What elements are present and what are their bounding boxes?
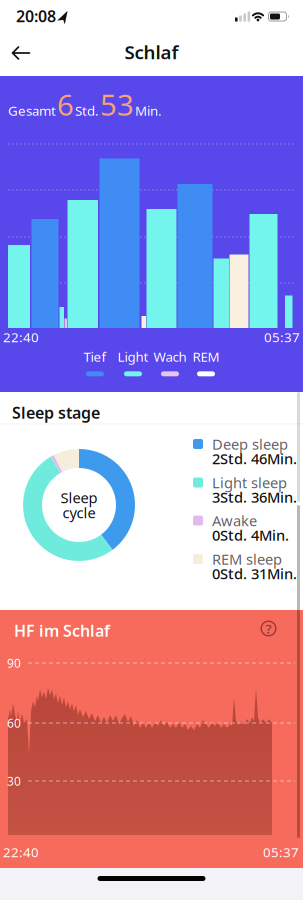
staticText: Light sleep xyxy=(212,473,287,492)
staticText: cycle xyxy=(62,503,95,522)
staticText: 53 xyxy=(100,85,134,124)
staticText: 3Std. 36Min. xyxy=(212,487,297,507)
staticText: 0Std. 31Min. xyxy=(212,564,297,583)
staticText: Schlaf xyxy=(124,40,178,64)
staticText: Gesamt xyxy=(8,102,56,119)
staticText: 90 xyxy=(7,655,21,671)
staticText: 0Std. 4Min. xyxy=(212,525,289,545)
staticText: Awake xyxy=(212,511,257,530)
staticText: REM xyxy=(192,348,219,365)
staticText: 05:37 xyxy=(263,843,299,861)
staticText: Std. xyxy=(75,102,99,119)
staticText: 05:37 xyxy=(264,328,300,346)
staticText: ? xyxy=(265,620,271,637)
staticText: Min. xyxy=(135,102,162,119)
staticText: 2Std. 46Min. xyxy=(212,449,297,468)
staticText: Deep sleep xyxy=(212,434,288,454)
staticText: Tief xyxy=(83,348,106,365)
staticText: 6 xyxy=(57,85,74,124)
staticText: 60 xyxy=(7,715,21,731)
staticText: Sleep stage xyxy=(12,402,100,423)
staticText: REM sleep xyxy=(212,549,282,569)
button[interactable]: ? xyxy=(260,620,277,637)
staticText: Sleep xyxy=(60,488,97,507)
staticText: 20:08 xyxy=(16,5,56,27)
staticText: HF im Schlaf xyxy=(14,620,110,641)
staticText: 22:40 xyxy=(3,843,39,861)
staticText: 30 xyxy=(7,773,21,789)
staticText: Wach xyxy=(153,348,186,365)
staticText: 22:40 xyxy=(3,328,39,346)
button[interactable] xyxy=(9,44,33,62)
staticText: Light xyxy=(117,348,148,365)
